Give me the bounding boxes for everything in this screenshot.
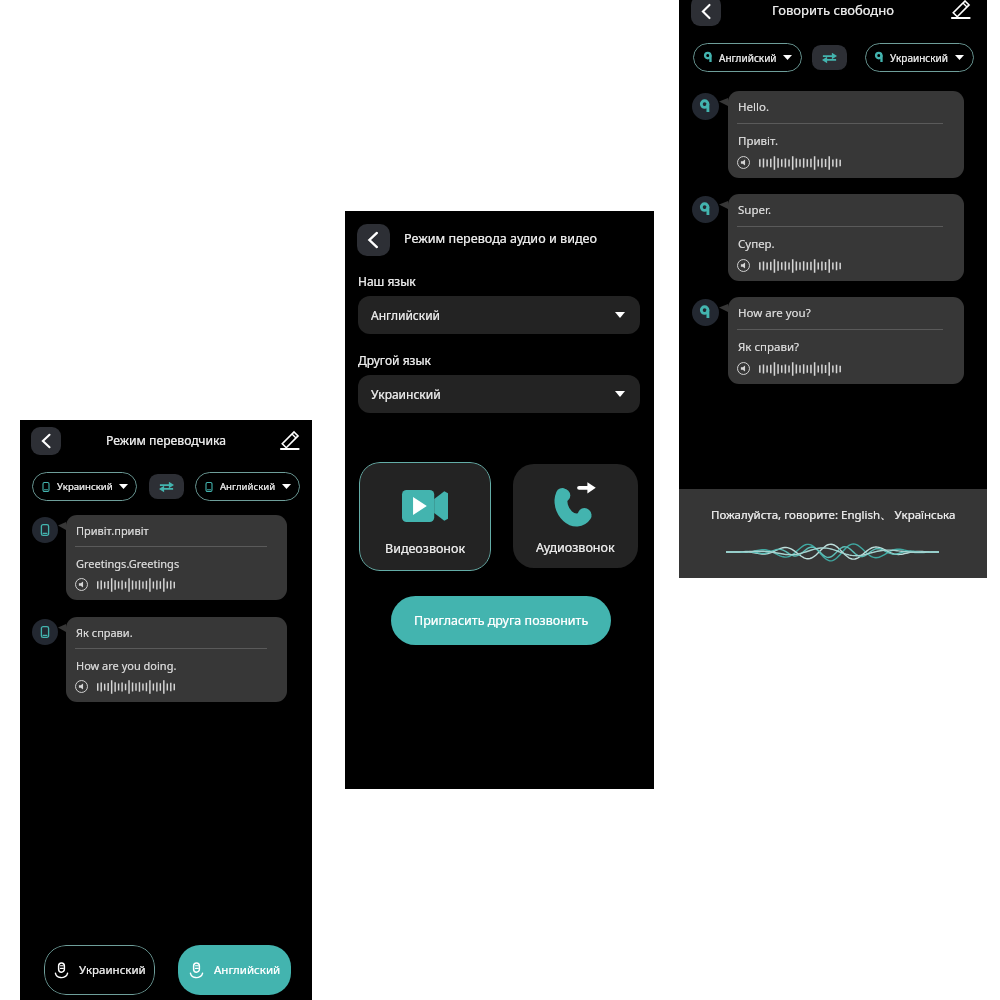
staticText: Говорить свободно (679, 1, 987, 19)
button[interactable]: Привіт.привіт (66, 515, 287, 600)
button[interactable]: Super. (728, 194, 964, 281)
button[interactable]: Английский (178, 945, 291, 995)
button[interactable]: Украинский (358, 375, 640, 413)
button[interactable]: Play audio (75, 680, 176, 693)
staticText: Английский (371, 307, 441, 323)
staticText: Привіт.привіт (76, 523, 149, 538)
button[interactable]: Як справи. (66, 617, 287, 702)
button[interactable]: Аудиозвонок (513, 464, 638, 568)
staticText: Як справи? (738, 339, 800, 355)
button[interactable]: Play audio (737, 156, 842, 169)
staticText: Привіт. (738, 133, 778, 149)
button[interactable]: Back (691, 0, 721, 26)
staticText: Режим переводчика (20, 432, 312, 449)
staticText: Пожалуйста, говорите: English、 Українськ… (711, 507, 956, 523)
staticText: Аудиозвонок (536, 539, 615, 556)
button[interactable]: Украинский (32, 472, 137, 501)
button[interactable]: Swap languages (149, 474, 184, 499)
button[interactable]: Украинский (865, 43, 974, 72)
staticText: Английский (214, 962, 281, 978)
staticText: Украинский (890, 51, 949, 65)
button[interactable]: Play audio (737, 259, 842, 272)
button[interactable]: How are you? (728, 297, 964, 384)
button[interactable]: Edit (280, 431, 299, 450)
button[interactable]: Видеозвонок (359, 462, 491, 571)
staticText: Super. (738, 202, 771, 218)
button[interactable]: Hello. (728, 91, 964, 178)
button[interactable]: Back (31, 427, 61, 455)
staticText: Видеозвонок (385, 540, 466, 557)
button[interactable]: Edit (951, 0, 970, 19)
button[interactable]: Back (357, 224, 390, 256)
staticText: Английский (719, 51, 777, 65)
button[interactable]: Swap languages (812, 45, 847, 70)
button[interactable]: Пригласить друга позвонить (391, 596, 611, 645)
staticText: Пригласить друга позвонить (414, 612, 589, 629)
button[interactable]: Play audio (75, 578, 176, 591)
staticText: Украинский (57, 480, 113, 493)
button[interactable]: Английский (195, 472, 300, 501)
staticText: Greetings.Greetings (76, 556, 180, 571)
button[interactable]: Play audio (737, 362, 842, 375)
staticText: Украинский (371, 386, 441, 402)
staticText: How are you? (738, 305, 811, 321)
staticText: Як справи. (76, 625, 133, 640)
staticText: Режим перевода аудио и видео (404, 230, 598, 247)
button[interactable]: Английский (358, 296, 640, 334)
staticText: Украинский (79, 962, 146, 978)
staticText: How are you doing. (76, 658, 177, 673)
staticText: Другой язык (358, 352, 431, 368)
staticText: Hello. (738, 99, 769, 115)
staticText: Наш язык (358, 273, 416, 289)
staticText: Английский (220, 480, 276, 493)
staticText: Супер. (738, 236, 775, 252)
button[interactable]: Украинский (44, 945, 155, 995)
button[interactable]: Английский (693, 43, 802, 72)
